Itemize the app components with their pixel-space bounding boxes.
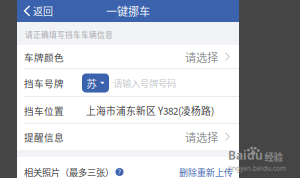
staticText: ? bbox=[118, 167, 121, 177]
staticText: 挡车位置 bbox=[24, 103, 64, 117]
staticText: 经验 bbox=[264, 150, 282, 163]
staticText: Baidu bbox=[228, 147, 263, 163]
staticText: 请正确填写挡车车辆信息 bbox=[25, 29, 113, 40]
staticText: 提醒信息 bbox=[24, 130, 64, 144]
button[interactable]: 苏 bbox=[82, 73, 109, 92]
staticText: jingyan.baidu.com bbox=[228, 164, 286, 172]
staticText: 车牌颜色 bbox=[24, 50, 64, 64]
staticText: 相关照片（最多三张） bbox=[24, 165, 114, 178]
staticText: 一键挪车 bbox=[106, 3, 150, 19]
button[interactable]: 车牌颜色 bbox=[17, 45, 239, 69]
button[interactable]: 删除重新上传 bbox=[179, 165, 233, 178]
staticText: 请选择 bbox=[185, 129, 218, 145]
staticText: 返回 bbox=[33, 4, 53, 18]
staticText: 上海市浦东新区 Y382(凌杨路) bbox=[86, 103, 214, 118]
staticText: 删除重新上传 bbox=[179, 165, 233, 178]
staticText: 请输入号牌号码 bbox=[113, 76, 176, 90]
staticText: 请选择 bbox=[185, 49, 218, 65]
staticText: 挡车号牌 bbox=[24, 76, 64, 90]
button[interactable]: 返回 bbox=[17, 0, 59, 22]
button[interactable]: 关于相关照片的说明 bbox=[115, 167, 124, 176]
button[interactable]: 提醒信息 bbox=[17, 124, 239, 150]
staticText: 苏 bbox=[86, 75, 97, 91]
